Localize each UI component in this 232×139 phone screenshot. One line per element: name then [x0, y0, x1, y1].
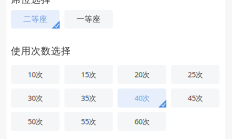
staticText: 55次 [81, 117, 96, 126]
staticText: 20次 [134, 70, 149, 79]
staticText: 40次 [134, 93, 149, 103]
button[interactable]: 一等座 [64, 10, 113, 28]
staticText: 35次 [81, 93, 96, 103]
staticText: 30次 [28, 93, 43, 103]
button[interactable]: 15次 [64, 65, 113, 84]
button[interactable]: 55次 [64, 112, 113, 131]
staticText: 一等座 [77, 14, 101, 24]
button[interactable]: 50次 [11, 112, 60, 131]
staticText: 10次 [28, 70, 43, 79]
staticText: 二等座 [23, 14, 47, 24]
staticText: 50次 [28, 117, 43, 126]
staticText: 使用次数选择 [11, 45, 71, 57]
staticText: 15次 [81, 70, 96, 79]
staticText: 25次 [188, 70, 203, 79]
button[interactable]: 二等座 [11, 10, 60, 28]
button[interactable]: 60次 [118, 112, 166, 131]
button[interactable]: 35次 [64, 88, 113, 107]
staticText: 45次 [188, 93, 203, 103]
button[interactable]: 25次 [171, 65, 219, 84]
button[interactable]: 30次 [11, 88, 60, 107]
button[interactable]: 20次 [118, 65, 166, 84]
button[interactable]: 40次 [118, 88, 166, 107]
button[interactable]: 10次 [11, 65, 60, 84]
button[interactable]: 45次 [171, 88, 219, 107]
staticText: 席位选择 [11, 0, 51, 6]
staticText: 60次 [134, 117, 149, 126]
